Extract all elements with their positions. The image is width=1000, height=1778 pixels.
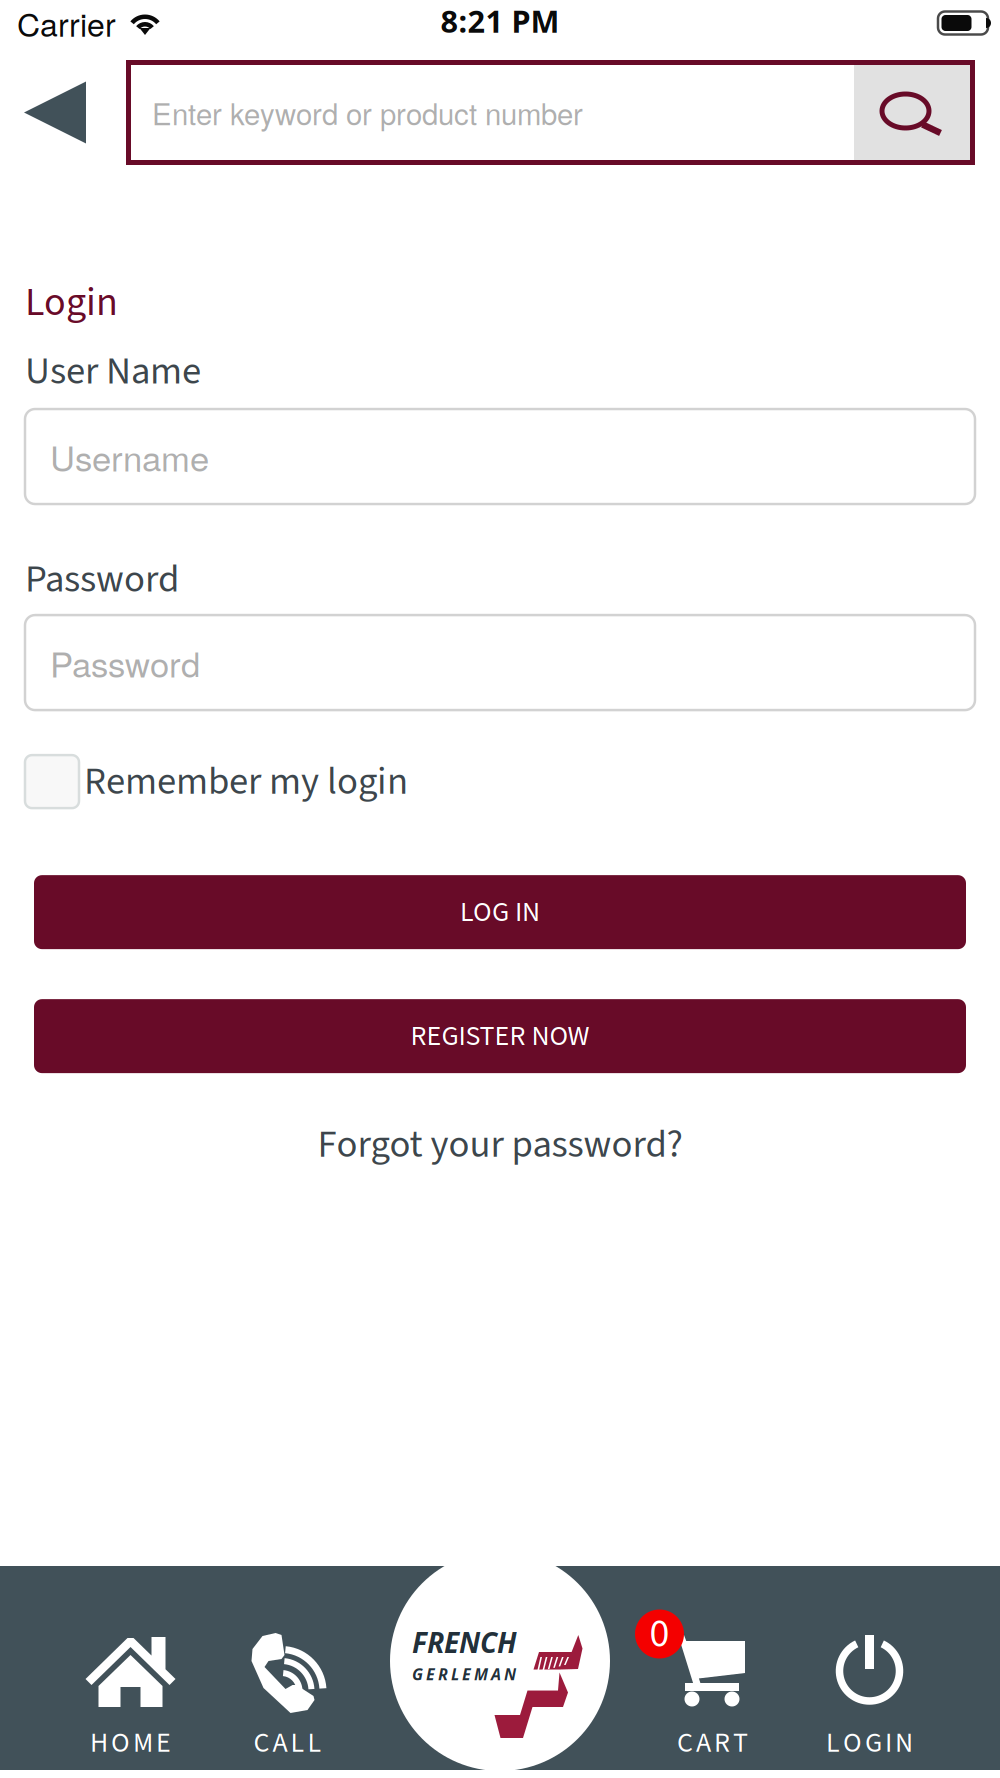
button[interactable]: LOG IN: [34, 875, 966, 949]
staticText: FRENCH: [412, 1623, 517, 1661]
staticText: G E R L E M A N: [412, 1663, 516, 1685]
button[interactable]: Search: [854, 65, 970, 160]
staticText: Remember my login: [84, 754, 408, 809]
staticText: Password: [25, 552, 179, 607]
button[interactable]: H O M E: [52, 1566, 209, 1770]
staticText: Username: [50, 432, 209, 481]
staticText: LOG IN: [460, 892, 540, 932]
staticText: Password: [50, 638, 200, 687]
button[interactable]: Forgot your password?: [25, 1117, 975, 1172]
staticText: C A R T: [677, 1723, 748, 1763]
button[interactable]: Password: [25, 615, 975, 710]
staticText: Carrier: [17, 0, 116, 46]
button[interactable]: Remember my login: [25, 754, 975, 809]
staticText: L O G I N: [826, 1723, 913, 1763]
button[interactable]: Username: [25, 409, 975, 504]
staticText: C A L L: [253, 1723, 321, 1763]
staticText: 8:21 PM: [440, 0, 559, 42]
button[interactable]: L O G I N: [791, 1566, 948, 1770]
button[interactable]: C A R T: [634, 1566, 791, 1770]
button[interactable]: Back: [0, 60, 126, 165]
staticText: 0: [649, 1605, 669, 1662]
staticText: User Name: [25, 344, 201, 399]
staticText: Login: [25, 274, 118, 331]
staticText: Forgot your password?: [317, 1117, 682, 1172]
button[interactable]: REGISTER NOW: [34, 999, 966, 1073]
staticText: H O M E: [90, 1723, 171, 1763]
staticText: REGISTER NOW: [410, 1016, 589, 1056]
staticText: Enter keyword or product number: [152, 91, 583, 133]
button[interactable]: C A L L: [209, 1566, 366, 1770]
